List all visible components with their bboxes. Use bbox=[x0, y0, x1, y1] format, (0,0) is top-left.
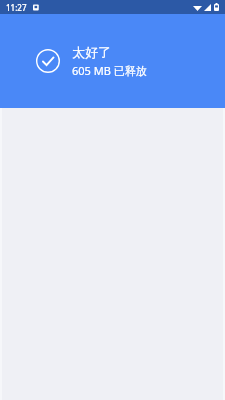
staticText: 605 MB 已释放 bbox=[72, 63, 147, 78]
button[interactable]: Done bbox=[0, 14, 225, 108]
other: Done bbox=[36, 49, 60, 73]
staticText: 11:27 bbox=[6, 2, 27, 13]
staticText: 太好了 bbox=[72, 44, 111, 60]
